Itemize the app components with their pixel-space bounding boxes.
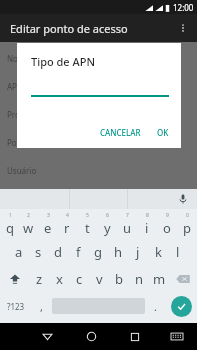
button[interactable]: ,: [31, 292, 52, 320]
staticText: r: [64, 219, 70, 237]
staticText: ?123: [7, 301, 25, 312]
staticText: b: [115, 270, 123, 288]
staticText: 6: [106, 212, 109, 219]
staticText: j: [136, 243, 140, 261]
button[interactable]: m: [149, 265, 169, 292]
button[interactable]: Apagar: [169, 265, 197, 292]
button[interactable]: Mais opções: [169, 14, 197, 42]
button[interactable]: Shift: [0, 265, 29, 292]
staticText: k: [155, 243, 162, 261]
button[interactable]: a: [9, 238, 28, 265]
button[interactable]: Início: [69, 323, 113, 350]
staticText: .: [154, 299, 157, 314]
button[interactable]: 9: [157, 211, 177, 238]
staticText: Tipo de APN: [31, 54, 95, 69]
button[interactable]: 8: [137, 211, 157, 238]
staticText: 2: [27, 212, 30, 219]
button[interactable]: 0: [177, 211, 197, 238]
staticText: 1: [9, 212, 12, 219]
staticText: a: [15, 243, 23, 261]
staticText: d: [54, 243, 62, 261]
button[interactable]: c: [69, 265, 89, 292]
staticText: u: [123, 219, 132, 237]
button[interactable]: OK: [153, 124, 173, 141]
staticText: n: [135, 270, 144, 288]
button[interactable]: f: [68, 238, 88, 265]
staticText: o: [163, 219, 171, 237]
staticText: h: [114, 243, 123, 261]
staticText: Editar ponto de acesso: [10, 21, 128, 36]
staticText: p: [183, 219, 191, 237]
staticText: Porta: [7, 137, 28, 148]
button[interactable]: h: [108, 238, 128, 265]
button[interactable]: d: [48, 238, 68, 265]
staticText: v: [96, 270, 103, 288]
staticText: m: [153, 270, 166, 288]
staticText: l: [176, 243, 180, 261]
staticText: 8: [146, 212, 149, 219]
staticText: ,: [40, 299, 43, 314]
button[interactable]: 3: [38, 211, 57, 238]
button[interactable]: 1: [0, 211, 19, 238]
staticText: y: [104, 219, 111, 237]
button[interactable]: v: [89, 265, 109, 292]
button[interactable]: 6: [97, 211, 117, 238]
button[interactable]: x: [49, 265, 69, 292]
button[interactable]: l: [168, 238, 188, 265]
button[interactable]: Concluído: [171, 296, 192, 317]
button[interactable]: b: [109, 265, 129, 292]
staticText: f: [76, 243, 81, 261]
button[interactable]: 4: [57, 211, 77, 238]
staticText: e: [44, 219, 52, 237]
staticText: OK: [157, 127, 169, 138]
staticText: s: [35, 243, 42, 261]
staticText: 12:00: [173, 2, 194, 13]
button[interactable]: ?123: [0, 292, 31, 320]
staticText: Nome: [7, 53, 30, 64]
staticText: APN: [7, 81, 24, 92]
button[interactable]: z: [29, 265, 49, 292]
staticText: 9: [166, 212, 169, 219]
staticText: 0: [186, 212, 189, 219]
button[interactable]: 7: [117, 211, 137, 238]
staticText: Usuário: [7, 165, 37, 176]
button[interactable]: s: [28, 238, 48, 265]
staticText: 7: [126, 212, 129, 219]
staticText: c: [76, 270, 83, 288]
staticText: CANCELAR: [100, 127, 141, 138]
staticText: w: [23, 219, 34, 237]
button[interactable]: CANCELAR: [96, 124, 145, 141]
button[interactable]: Teclado: [157, 323, 197, 350]
staticText: i: [145, 219, 149, 237]
button[interactable]: .: [145, 292, 165, 320]
staticText: Proxy: [7, 109, 28, 120]
button[interactable]: 2: [19, 211, 38, 238]
button[interactable]: Entrada de voz: [175, 191, 191, 207]
staticText: z: [36, 270, 43, 288]
staticText: 3: [47, 212, 50, 219]
button[interactable]: Recentes: [113, 323, 157, 350]
staticText: x: [56, 270, 63, 288]
staticText: q: [6, 219, 14, 237]
staticText: t: [85, 219, 90, 237]
button[interactable]: 5: [77, 211, 97, 238]
button[interactable]: Voltar: [25, 323, 69, 350]
button[interactable]: n: [129, 265, 149, 292]
button[interactable]: g: [88, 238, 108, 265]
button[interactable]: k: [148, 238, 168, 265]
button[interactable]: j: [128, 238, 148, 265]
staticText: 5: [86, 212, 89, 219]
staticText: g: [94, 243, 102, 261]
staticText: 4: [66, 212, 69, 219]
